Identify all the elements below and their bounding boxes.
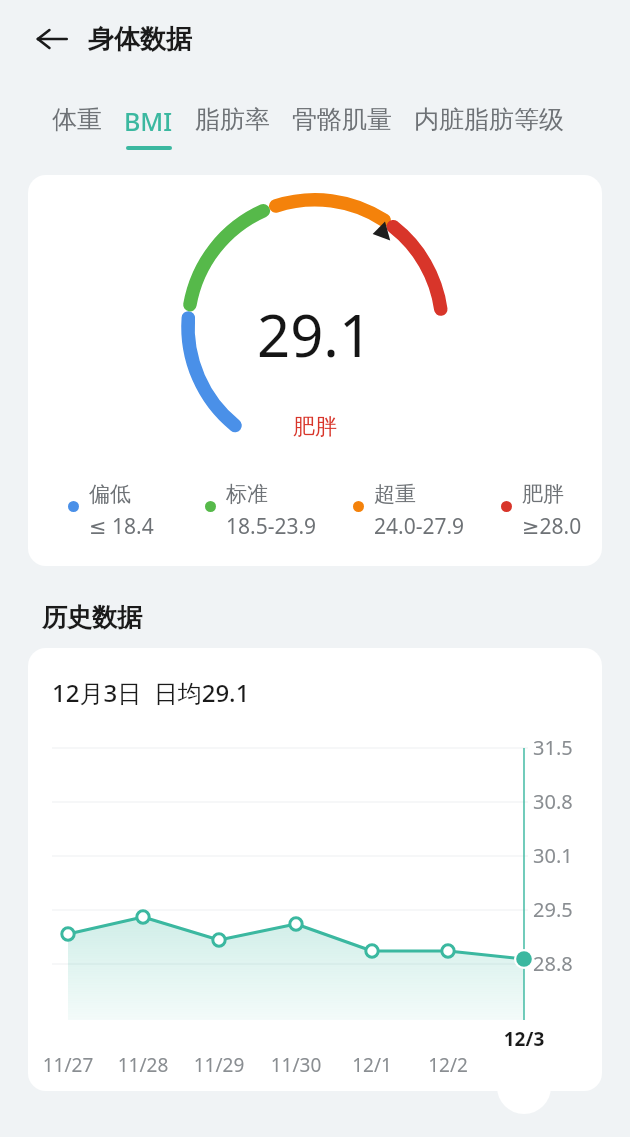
- staticText: 28.8: [533, 950, 573, 977]
- staticText: 超重: [374, 481, 416, 507]
- staticText: 脂肪率: [195, 104, 270, 135]
- staticText: 肥胖: [293, 413, 337, 441]
- staticText: 12月3日 日均29.1: [52, 676, 250, 709]
- staticText: 肥胖: [522, 481, 564, 507]
- staticText: 11/28: [115, 1052, 171, 1078]
- staticText: 骨骼肌量: [292, 104, 392, 135]
- staticText: 身体数据: [88, 23, 192, 56]
- staticText: 标准: [226, 481, 268, 507]
- button[interactable]: 内脏脂肪等级: [414, 104, 564, 143]
- staticText: 30.1: [533, 842, 573, 869]
- staticText: 29.5: [533, 896, 573, 923]
- staticText: 31.5: [533, 734, 573, 761]
- staticText: ≥28.0: [522, 512, 582, 541]
- staticText: 历史数据: [42, 602, 142, 633]
- staticText: 12/3: [496, 1026, 552, 1052]
- staticText: 12/1: [344, 1052, 400, 1078]
- staticText: 12/2: [420, 1052, 476, 1078]
- staticText: 18.5-23.9: [226, 512, 317, 541]
- staticText: 偏低: [89, 481, 131, 507]
- staticText: 11/27: [40, 1052, 96, 1078]
- staticText: 29.1: [257, 295, 373, 374]
- button[interactable]: Back: [28, 15, 76, 63]
- staticText: 30.8: [533, 788, 573, 815]
- staticText: BMI: [124, 104, 173, 138]
- button[interactable]: 体重: [52, 104, 102, 143]
- staticText: 体重: [52, 104, 102, 135]
- button[interactable]: 脂肪率: [195, 104, 270, 143]
- staticText: 内脏脂肪等级: [414, 104, 564, 135]
- staticText: 11/30: [268, 1052, 324, 1078]
- staticText: 24.0-27.9: [374, 512, 465, 541]
- button[interactable]: BMI: [124, 104, 173, 150]
- staticText: 11/29: [191, 1052, 247, 1078]
- button[interactable]: Add record: [497, 1060, 551, 1114]
- button[interactable]: 骨骼肌量: [292, 104, 392, 143]
- staticText: ≤ 18.4: [89, 512, 154, 541]
